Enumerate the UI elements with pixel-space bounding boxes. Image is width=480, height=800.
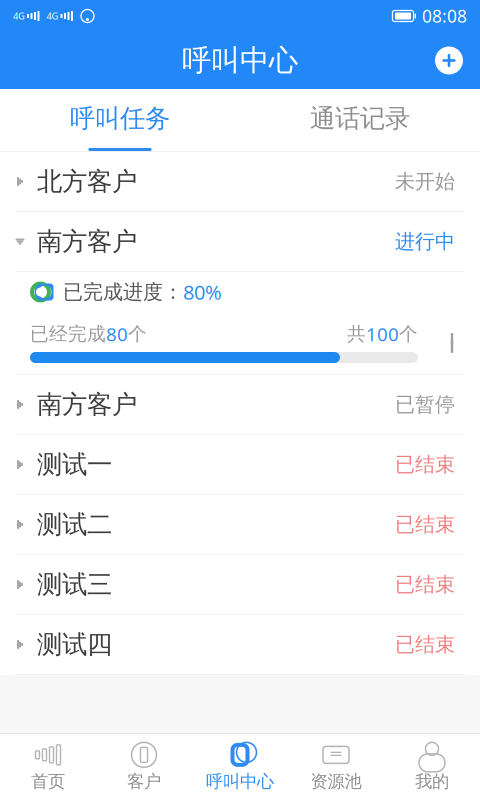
button[interactable]: 测试三 [0,555,480,615]
staticText: 已暂停 [395,392,455,417]
staticText: 个 [128,322,147,345]
button[interactable]: 北方客户 [0,152,480,212]
staticText: 我的 [415,771,449,792]
staticText: 已完成进度： [63,280,183,304]
button[interactable]: 南方客户 [0,212,480,272]
staticText: 已结束 [395,632,455,657]
staticText: 共 [347,322,366,345]
button[interactable]: 客户 [96,734,192,800]
button[interactable]: 我的 [384,734,480,800]
staticText: 4G [13,10,25,22]
staticText: 测试四 [37,629,112,660]
staticText: 测试一 [37,449,112,480]
staticText: 呼叫中心 [206,771,274,792]
staticText: 资源池 [310,771,361,792]
staticText: 测试二 [37,509,112,540]
staticText: 呼叫任务 [70,103,170,134]
button[interactable]: 南方客户 [0,375,480,435]
staticText: 首页 [31,771,65,792]
staticText: 个 [399,322,418,345]
staticText: 北方客户 [37,166,137,197]
staticText: 80 [106,322,128,346]
staticText: 已结束 [395,452,455,477]
button[interactable]: 呼叫任务 [0,89,240,151]
staticText: 未开始 [395,169,455,194]
staticText: 已结束 [395,512,455,537]
button[interactable]: 首页 [0,734,96,800]
staticText: 08:08 [422,4,467,27]
staticText: 80% [183,279,222,305]
staticText: 已经完成 [30,322,106,345]
staticText: 南方客户 [37,226,137,257]
staticText: 通话记录 [310,103,410,134]
button[interactable]: 测试二 [0,495,480,555]
staticText: 100 [366,322,399,346]
button[interactable]: 新建任务 [427,34,471,86]
staticText: 已结束 [395,572,455,597]
button[interactable]: 资源池 [288,734,384,800]
staticText: 4G [46,10,58,22]
button[interactable]: 测试四 [0,615,480,675]
staticText: 呼叫中心 [182,42,298,78]
button[interactable]: 已完成进度： [0,272,480,375]
staticText: 南方客户 [37,389,137,420]
staticText: 进行中 [395,229,455,254]
button[interactable]: 呼叫中心 [192,734,288,800]
staticText: 客户 [127,771,161,792]
staticText: 测试三 [37,569,112,600]
button[interactable]: 通话记录 [240,89,480,151]
button[interactable]: 测试一 [0,435,480,495]
